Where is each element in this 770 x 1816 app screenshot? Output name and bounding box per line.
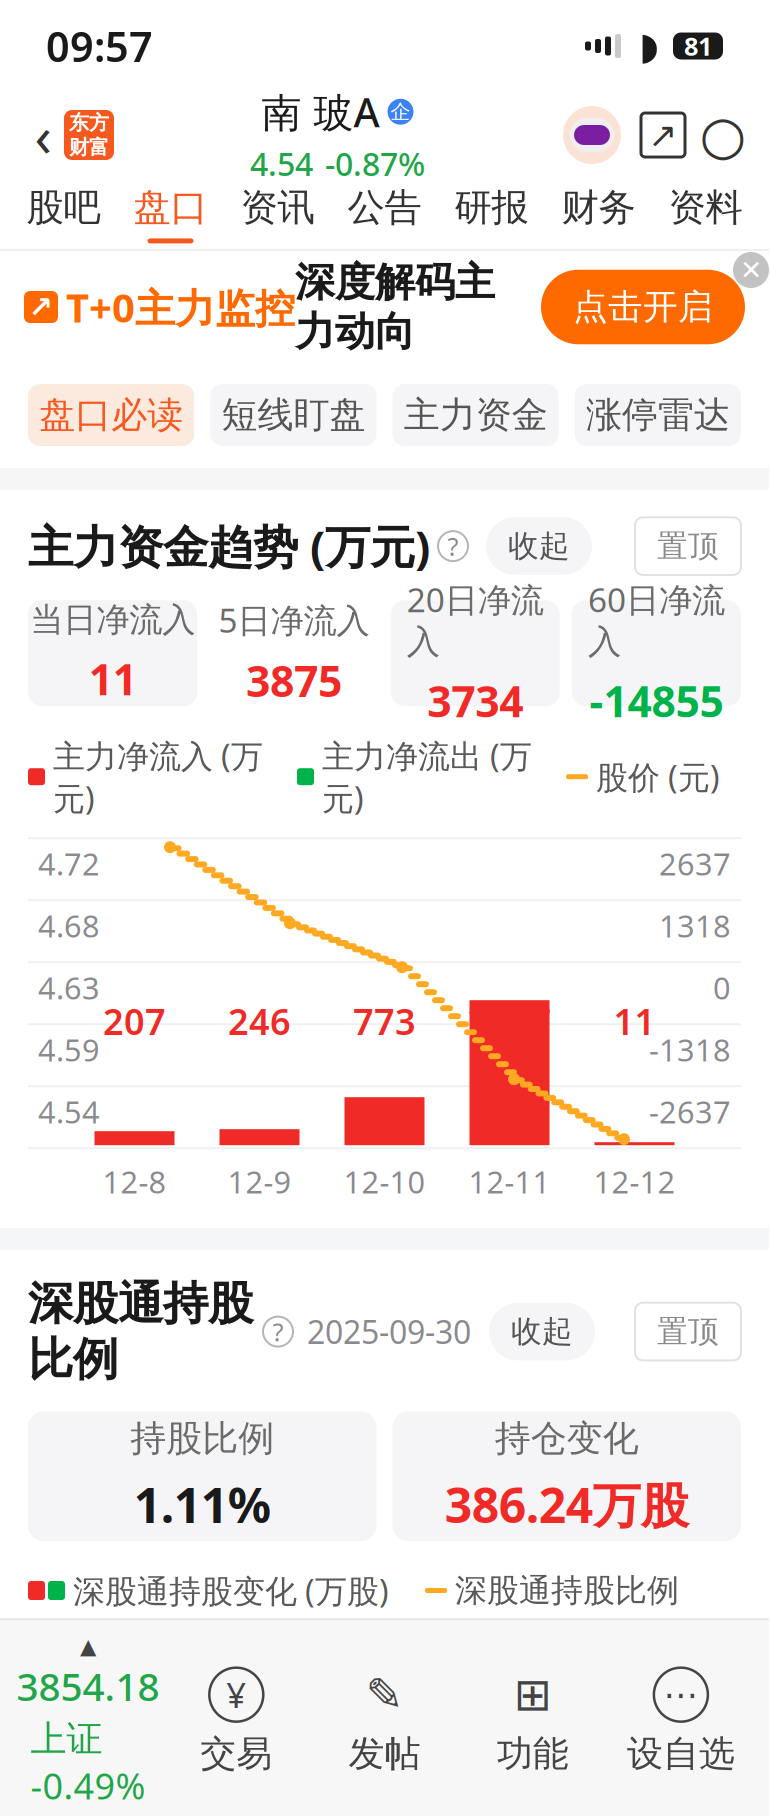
staticText: ? [447, 529, 458, 563]
staticText: 2637 [659, 843, 731, 884]
staticText: 12-10 [343, 1161, 425, 1202]
staticText: 60日净流入 [588, 577, 725, 662]
staticText: ○ [699, 105, 746, 165]
button[interactable]: 返回 [22, 104, 64, 166]
staticText: 386.24万股 [445, 1472, 689, 1536]
staticText: 东方 [69, 110, 109, 135]
staticText: -14855 [589, 672, 723, 729]
staticText: 1.11% [134, 1472, 271, 1536]
staticText: ✎ [365, 1669, 403, 1720]
staticText: 深度解码主力动向 [295, 258, 495, 356]
staticText: 收起 [508, 527, 570, 565]
staticText: ◗ [639, 25, 659, 67]
staticText: 4.68 [38, 905, 100, 946]
staticText: ▲ [80, 1634, 96, 1658]
staticText: 2637 [467, 997, 551, 1045]
button[interactable]: 搜索 [699, 111, 747, 159]
button[interactable]: ¥ [162, 1668, 310, 1776]
staticText: 4.54 [38, 1091, 100, 1132]
button[interactable]: ✎ [310, 1668, 459, 1776]
button[interactable]: ⋯ [607, 1668, 755, 1776]
staticText: 资料 [668, 185, 742, 230]
button[interactable]: 东方财富 [64, 110, 114, 160]
button[interactable]: 关闭 [733, 252, 769, 288]
staticText: 收起 [511, 1313, 573, 1350]
staticText: ? [272, 1315, 283, 1348]
button[interactable]: 5日净流入 [209, 600, 379, 706]
staticText: 股吧 [26, 185, 100, 230]
staticText: 资讯 [240, 185, 314, 230]
button[interactable]: 公告 [331, 179, 438, 249]
staticText: 4.54 [250, 142, 313, 185]
button[interactable]: 持仓变化 [392, 1411, 741, 1541]
staticText: 20日净流入 [407, 577, 544, 662]
staticText: 09:57 [46, 19, 153, 73]
staticText: -0.87% [325, 142, 425, 185]
button[interactable]: 置顶 [635, 1303, 741, 1360]
staticText: 4.72 [38, 843, 100, 884]
button[interactable]: 资料 [652, 179, 759, 249]
button[interactable]: 置顶 [635, 517, 741, 575]
staticText: 交易 [200, 1732, 272, 1776]
staticText: 12-11 [468, 1161, 550, 1202]
button[interactable]: 分享 [641, 113, 685, 157]
staticText: 0 [713, 967, 731, 1008]
staticText: 246 [228, 997, 291, 1045]
staticText: 3734 [427, 672, 523, 729]
button[interactable]: 智能助手 [561, 104, 623, 166]
button[interactable]: 点击开启 [541, 270, 745, 344]
button[interactable]: 盘口必读 [28, 384, 194, 446]
staticText: 南 玻A [261, 85, 379, 138]
button[interactable]: 20日净流入 [390, 600, 560, 706]
staticText: 财富 [69, 135, 109, 160]
staticText: 盘口 [133, 185, 207, 230]
staticText: 1318 [659, 905, 731, 946]
staticText: 当日净流入 [30, 599, 195, 640]
button[interactable]: ▲ [14, 1634, 162, 1809]
button[interactable]: 财务 [545, 179, 652, 249]
staticText: 主力净流入 (万元) [53, 734, 263, 819]
staticText: 11 [613, 997, 655, 1045]
staticText: ✕ [740, 255, 762, 285]
button[interactable]: 涨停雷达 [575, 384, 741, 446]
button[interactable]: 研报 [438, 179, 545, 249]
button[interactable]: 收起 [489, 1303, 595, 1360]
staticText: 2025-09-30 [307, 1310, 471, 1353]
staticText: 81 [684, 29, 712, 63]
button[interactable]: 盘口 [117, 179, 224, 249]
button[interactable]: 股吧 [10, 179, 117, 249]
staticText: -1318 [649, 1029, 731, 1070]
button[interactable]: 短线盯盘 [210, 384, 377, 446]
staticText: 11 [89, 650, 137, 707]
button[interactable]: ⊞ [459, 1668, 607, 1776]
staticText: 12-12 [593, 1161, 675, 1202]
staticText: 上证 -0.49% [31, 1714, 146, 1809]
button[interactable]: 主力资金 [392, 384, 559, 446]
button[interactable]: 说明 [438, 531, 468, 561]
staticText: 深股通持股比例 [28, 1276, 253, 1387]
staticText: ↗ [28, 290, 53, 324]
staticText: 短线盯盘 [221, 393, 365, 437]
button[interactable]: 当日净流入 [28, 600, 197, 706]
staticText: 企 [390, 99, 410, 124]
staticText: 4.59 [38, 1029, 100, 1070]
button[interactable]: 说明 [263, 1317, 293, 1347]
staticText: 12-8 [102, 1161, 166, 1202]
staticText: 773 [353, 997, 416, 1045]
staticText: 公告 [347, 185, 421, 230]
button[interactable]: 60日净流入 [572, 600, 741, 706]
staticText: 3854.18 [17, 1660, 160, 1712]
button[interactable]: 资讯 [224, 179, 331, 249]
staticText: -2637 [649, 1091, 731, 1132]
staticText: 发帖 [348, 1732, 420, 1776]
button[interactable]: 收起 [486, 517, 592, 575]
staticText: 研报 [454, 185, 528, 230]
staticText: 设自选 [627, 1732, 735, 1776]
staticText: 功能 [497, 1732, 569, 1776]
staticText: 207 [103, 997, 166, 1045]
button[interactable]: 持股比例 [28, 1411, 376, 1541]
staticText: ↗ [648, 115, 677, 155]
staticText: 深股通持股比例 [455, 1571, 679, 1610]
staticText: 5日净流入 [218, 598, 369, 642]
staticText: 3875 [246, 652, 342, 709]
